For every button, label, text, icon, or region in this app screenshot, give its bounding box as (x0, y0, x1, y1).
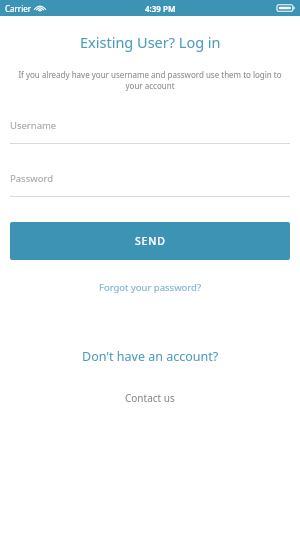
button[interactable]: SEND (10, 222, 290, 260)
staticText: Carrier (5, 3, 32, 14)
button[interactable]: Username (10, 119, 290, 144)
staticText: Don't have an account? (82, 348, 219, 365)
staticText: Username (10, 119, 57, 132)
staticText: 4:39 PM (145, 3, 176, 14)
button[interactable]: Contact us (115, 386, 185, 410)
button[interactable]: Don't have an account? (72, 343, 229, 370)
staticText: Existing User? Log in (80, 32, 221, 52)
staticText: Contact us (125, 391, 175, 405)
staticText: SEND (135, 234, 166, 248)
button[interactable]: Password (10, 172, 290, 197)
staticText: Password (10, 172, 53, 185)
staticText: If you already have your username and pa… (13, 69, 287, 91)
staticText: Forgot your password? (99, 281, 202, 294)
button[interactable]: Forgot your password? (89, 276, 212, 299)
